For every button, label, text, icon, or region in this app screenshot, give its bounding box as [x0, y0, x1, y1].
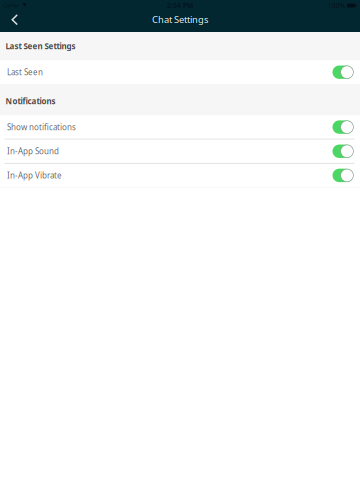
button[interactable]: Back	[0, 11, 25, 32]
staticText: 2:04 PM	[167, 1, 193, 10]
staticText: Last Seen Settings	[5, 41, 75, 51]
staticText: Last Seen	[7, 67, 43, 77]
button[interactable]: Show notifications	[0, 115, 360, 139]
button[interactable]: Last Seen	[0, 60, 360, 84]
staticText: In-App Vibrate	[7, 170, 62, 181]
button[interactable]: In-App Vibrate	[0, 164, 360, 187]
staticText: Notifications	[5, 96, 55, 106]
staticText: In-App Sound	[7, 146, 59, 156]
button[interactable]: In-App Sound	[0, 140, 360, 163]
staticText: Chat Settings	[152, 13, 208, 26]
staticText: 100%	[327, 1, 345, 10]
staticText: Carrier	[3, 2, 19, 9]
staticText: Show notifications	[7, 122, 76, 132]
